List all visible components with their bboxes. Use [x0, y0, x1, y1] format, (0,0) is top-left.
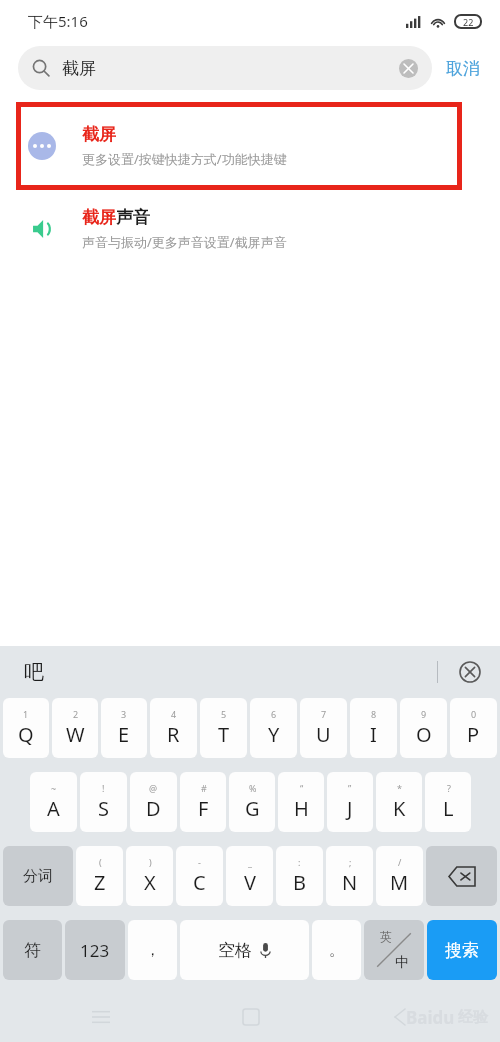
button[interactable]: # [180, 772, 226, 832]
staticText: A [47, 795, 60, 822]
staticText: U [316, 721, 331, 748]
button[interactable]: ! [80, 772, 127, 832]
button[interactable]: 5 [200, 698, 247, 758]
staticText: * [397, 782, 402, 794]
staticText: O [416, 721, 432, 748]
button[interactable]: % [229, 772, 275, 832]
button[interactable]: ， [128, 920, 177, 980]
button[interactable]: 分词 [3, 846, 73, 906]
button[interactable]: ( [76, 846, 123, 906]
staticText: / [398, 856, 402, 868]
staticText: 截屏 [82, 124, 116, 145]
staticText: 分词 [23, 867, 53, 886]
button[interactable]: Clear [399, 59, 418, 78]
button[interactable]: - [176, 846, 223, 906]
staticText: 搜索 [445, 940, 479, 961]
staticText: 4 [171, 708, 177, 720]
button[interactable]: 截屏声音 [0, 190, 500, 268]
staticText: Q [18, 721, 34, 748]
staticText: 8 [371, 708, 377, 720]
button[interactable]: : [276, 846, 323, 906]
button[interactable]: 123 [65, 920, 125, 980]
button[interactable]: 7 [300, 698, 347, 758]
staticText: ( [99, 856, 102, 868]
staticText: 0 [471, 708, 477, 720]
button[interactable]: ” [327, 772, 373, 832]
staticText: T [218, 721, 230, 748]
staticText: 截屏声音 [82, 207, 150, 228]
button[interactable]: 吧 [18, 660, 50, 685]
staticText: V [244, 869, 256, 896]
staticText: 7 [321, 708, 327, 720]
staticText: 中 [395, 954, 409, 972]
staticText: 9 [421, 708, 427, 720]
staticText: 符 [24, 940, 41, 961]
staticText: 6 [271, 708, 277, 720]
staticText: L [443, 795, 454, 822]
staticText: P [467, 721, 480, 748]
button[interactable]: 1 [3, 698, 49, 758]
staticText: “ [300, 782, 304, 794]
staticText: 3 [121, 708, 127, 720]
staticText: : [298, 856, 301, 868]
button[interactable]: 9 [400, 698, 447, 758]
staticText: 2 [73, 708, 79, 720]
staticText: ， [145, 941, 160, 960]
button[interactable]: ~ [30, 772, 77, 832]
button[interactable]: 截屏 [18, 46, 432, 90]
staticText: 1 [23, 708, 29, 720]
button[interactable]: Close keyboard [458, 660, 482, 684]
staticText: @ [149, 782, 158, 794]
staticText: ; [349, 856, 352, 868]
button[interactable]: 0 [450, 698, 497, 758]
staticText: ? [447, 782, 451, 794]
button[interactable]: 。 [312, 920, 361, 980]
staticText: S [98, 795, 109, 822]
button[interactable]: / [376, 846, 423, 906]
staticText: 空格 [218, 940, 252, 961]
button[interactable]: ; [326, 846, 373, 906]
button[interactable]: 4 [150, 698, 197, 758]
staticText: ! [102, 782, 105, 794]
staticText: H [294, 795, 309, 822]
staticText: ~ [51, 782, 57, 794]
button[interactable]: 空格 [180, 920, 309, 980]
button[interactable] [426, 846, 497, 906]
staticText: N [342, 869, 358, 896]
button[interactable]: ) [126, 846, 173, 906]
staticText: G [245, 795, 260, 822]
staticText: B [293, 869, 306, 896]
staticText: 22 [463, 16, 474, 28]
staticText: 声音与振动/更多声音设置/截屏声音 [82, 233, 287, 251]
staticText: Y [268, 721, 280, 748]
button[interactable]: * [376, 772, 422, 832]
button[interactable]: _ [226, 846, 273, 906]
button[interactable]: 搜索 [427, 920, 497, 980]
staticText: C [193, 869, 206, 896]
staticText: _ [248, 856, 252, 868]
button[interactable]: @ [130, 772, 177, 832]
staticText: ) [149, 856, 152, 868]
staticText: 。 [329, 941, 344, 960]
button[interactable]: 8 [350, 698, 397, 758]
staticText: 取消 [446, 58, 480, 79]
staticText: M [390, 869, 409, 896]
staticText: 更多设置/按键快捷方式/功能快捷键 [82, 150, 287, 168]
button[interactable]: ? [425, 772, 471, 832]
button[interactable]: 6 [250, 698, 297, 758]
staticText: 吧 [24, 660, 44, 685]
staticText: I [370, 721, 377, 748]
button[interactable]: 取消 [432, 58, 482, 79]
staticText: D [146, 795, 161, 822]
button[interactable]: 2 [52, 698, 98, 758]
button[interactable]: 截屏 [0, 102, 500, 190]
button[interactable]: 符 [3, 920, 62, 980]
button[interactable]: 3 [101, 698, 147, 758]
staticText: 123 [80, 939, 110, 962]
button[interactable]: 英 [364, 920, 424, 980]
button[interactable]: “ [278, 772, 324, 832]
staticText: # [201, 782, 207, 794]
